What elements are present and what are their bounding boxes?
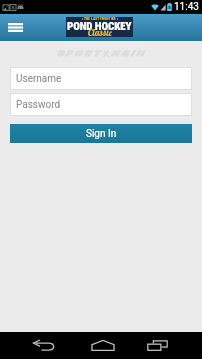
button[interactable]: Home: [75, 332, 130, 359]
staticText: Sign In: [86, 128, 117, 140]
staticText: 11:43: [174, 1, 199, 13]
button[interactable]: Back: [16, 332, 71, 359]
button[interactable]: Username: [10, 67, 192, 90]
staticText: SPORT: [56, 49, 102, 58]
button[interactable]: Recent apps: [130, 332, 185, 359]
button[interactable]: Password: [10, 93, 192, 116]
button[interactable]: Sign In: [10, 124, 192, 143]
button[interactable]: Open navigation menu: [0, 14, 31, 41]
staticText: Password: [16, 99, 61, 111]
staticText: Username: [16, 73, 62, 85]
staticText: POND HOCKEY: [67, 20, 132, 33]
staticText: Classic: [88, 27, 112, 38]
staticText: THE LAST FRONTIER: [84, 17, 116, 21]
staticText: NGIN: [110, 49, 146, 58]
